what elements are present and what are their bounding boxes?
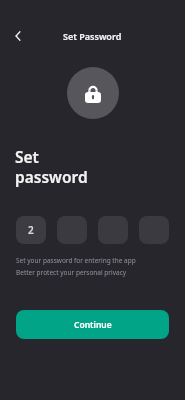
staticText: Set Password [63, 30, 122, 42]
button[interactable]: Back [6, 24, 30, 48]
button[interactable]: 2 [16, 216, 46, 244]
staticText: Better protect your personal privacy [16, 268, 127, 277]
button[interactable] [98, 216, 128, 244]
staticText: 2 [28, 223, 34, 237]
staticText: Set password [15, 146, 88, 188]
staticText: Set your password for entering the app [16, 256, 136, 265]
button[interactable]: Continue [16, 310, 169, 339]
staticText: Continue [74, 319, 112, 331]
button[interactable] [139, 216, 169, 244]
button[interactable] [57, 216, 87, 244]
